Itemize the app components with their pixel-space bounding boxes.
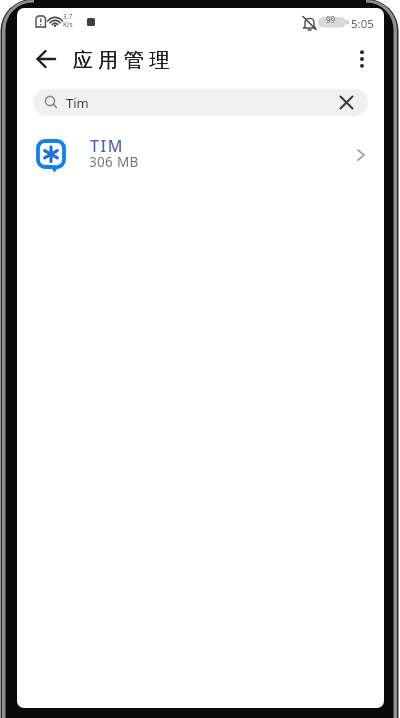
staticText: 应用管理 [70,48,172,73]
button[interactable]: Tim [33,89,368,116]
button[interactable] [27,42,65,76]
staticText: 99 [326,14,336,25]
staticText: TIM [90,135,125,157]
staticText: 3.7 [63,12,73,21]
button[interactable] [329,89,364,116]
staticText: K/s [63,20,73,29]
button[interactable] [347,42,377,76]
button[interactable]: TIM [17,128,384,178]
staticText: Tim [66,94,89,112]
staticText: 5:05 [351,16,374,32]
staticText: 应用管理 [70,48,172,73]
staticText: 306 MB [89,153,139,171]
staticText: 应用管理 [70,48,172,73]
